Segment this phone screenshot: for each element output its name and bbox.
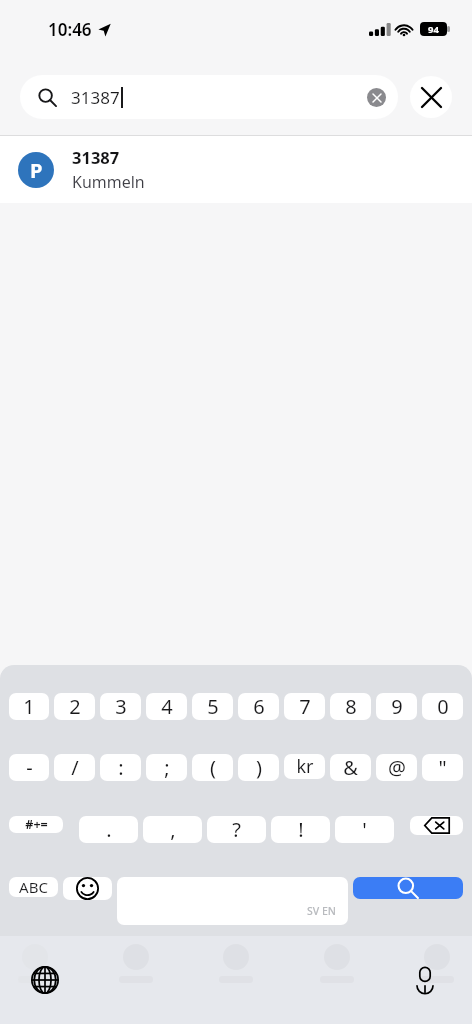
button[interactable]: ( [192, 754, 233, 781]
button[interactable]: ! [271, 816, 330, 843]
staticText: 7 [299, 693, 311, 720]
staticText: 5 [207, 693, 219, 720]
staticText: Kummeln [72, 171, 145, 193]
button[interactable]: 8 [330, 693, 371, 720]
staticText: & [343, 754, 358, 781]
staticText: 94 [428, 23, 439, 36]
button[interactable]: kr [284, 754, 325, 779]
staticText: 31387 [72, 146, 120, 168]
staticText: " [438, 754, 447, 781]
staticText: #+= [25, 816, 48, 833]
staticText: 2 [69, 693, 81, 720]
staticText: ABC [19, 877, 48, 897]
button[interactable]: : [100, 754, 141, 781]
button[interactable]: 2 [54, 693, 95, 720]
button[interactable]: / [54, 754, 95, 781]
staticText: , [170, 816, 176, 843]
staticText: 0 [437, 693, 449, 720]
staticText: 9 [391, 693, 403, 720]
button[interactable]: ) [238, 754, 279, 781]
button[interactable]: ? [207, 816, 266, 843]
button[interactable]: 6 [238, 693, 279, 720]
button[interactable]: 9 [376, 693, 417, 720]
staticText: ) [256, 754, 262, 781]
button[interactable]: Clear text [367, 88, 386, 107]
staticText: 3 [115, 693, 127, 720]
staticText: ? [232, 816, 241, 843]
button[interactable]: . [79, 816, 138, 843]
staticText: : [118, 754, 124, 781]
button[interactable]: & [330, 754, 371, 781]
button[interactable]: P [0, 136, 472, 203]
button[interactable]: ; [146, 754, 187, 781]
staticText: kr [296, 754, 314, 779]
staticText: 6 [253, 693, 265, 720]
button[interactable]: 1 [9, 693, 49, 720]
staticText: ( [210, 754, 216, 781]
button[interactable]: 4 [146, 693, 187, 720]
staticText: 31387 [71, 86, 120, 109]
button[interactable]: Backspace [410, 816, 463, 835]
staticText: ' [362, 816, 367, 843]
button[interactable]: Space [117, 877, 348, 925]
staticText: 8 [345, 693, 357, 720]
staticText: / [71, 754, 79, 781]
button[interactable]: ABC [9, 877, 58, 897]
button[interactable]: 0 [422, 693, 463, 720]
button[interactable]: ' [335, 816, 394, 843]
button[interactable]: 7 [284, 693, 325, 720]
button[interactable]: Voice input [408, 963, 442, 997]
button[interactable]: 31387 [20, 75, 398, 119]
button[interactable]: , [143, 816, 202, 843]
staticText: ! [298, 816, 304, 843]
button[interactable]: @ [376, 754, 417, 781]
button[interactable]: " [422, 754, 463, 781]
staticText: 1 [23, 693, 35, 720]
staticText: @ [388, 754, 406, 781]
staticText: SV EN [307, 904, 336, 918]
staticText: P [30, 157, 43, 184]
button[interactable]: 5 [192, 693, 233, 720]
staticText: ; [164, 754, 170, 781]
staticText: 4 [161, 693, 173, 720]
staticText: 10:46 [48, 18, 92, 41]
button[interactable]: 3 [100, 693, 141, 720]
staticText: - [26, 754, 33, 781]
button[interactable]: - [9, 754, 49, 781]
staticText: . [106, 816, 112, 843]
button[interactable]: Search [353, 877, 463, 899]
button[interactable]: #+= [9, 816, 63, 833]
button[interactable]: Emoji [63, 877, 112, 900]
button[interactable]: Close search [410, 76, 452, 118]
button[interactable]: Change keyboard language [28, 963, 62, 997]
